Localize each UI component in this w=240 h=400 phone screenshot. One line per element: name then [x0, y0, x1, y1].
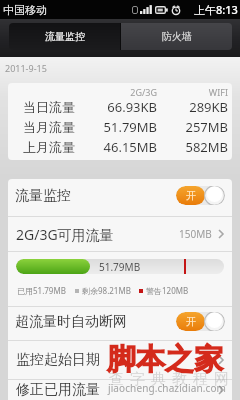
staticText: 150MB	[179, 227, 212, 241]
button[interactable]: Toggle on	[176, 186, 225, 205]
staticText: 已用51.79MB	[17, 285, 66, 296]
staticText: 582MB	[168, 138, 228, 156]
staticText: 超流量时自动断网	[15, 313, 127, 331]
staticText: 脚本之家	[107, 341, 223, 378]
button[interactable]: 防火墙	[121, 23, 232, 50]
staticText: 防火墙	[162, 30, 192, 43]
button[interactable]: 修正已用流量	[8, 380, 232, 400]
staticText: 剩余98.21MB	[82, 285, 131, 296]
button[interactable]: 超流量时自动断网	[8, 307, 232, 340]
staticText: 当月流量	[23, 119, 75, 135]
staticText: 46.15MB	[97, 138, 157, 156]
staticText: 51.79MB	[97, 118, 157, 136]
staticText: 中国移动	[3, 3, 47, 17]
staticText: 257MB	[168, 118, 228, 136]
staticText: 开	[186, 315, 196, 328]
staticText: WIFI	[168, 86, 228, 97]
staticText: 流量监控	[15, 187, 71, 205]
staticText: 上月流量	[23, 139, 75, 155]
button[interactable]: 流量监控	[8, 179, 232, 216]
staticText: 289KB	[168, 98, 228, 116]
staticText: 警告120MB	[146, 285, 189, 296]
button[interactable]: 2G/3G可用流量	[8, 217, 232, 251]
staticText: 2011-9-15	[5, 62, 47, 74]
staticText: 修正已用流量	[16, 381, 100, 399]
staticText: 查字典教程网	[106, 370, 232, 389]
button[interactable]: 流量监控	[9, 23, 120, 50]
staticText: 监控起始日期	[16, 351, 100, 369]
staticText: 开	[186, 189, 196, 202]
button[interactable]: Toggle on	[176, 312, 225, 331]
staticText: 2G/3G可用流量	[16, 225, 114, 244]
staticText: 66.93KB	[97, 98, 157, 116]
staticText: 上午8:13	[194, 2, 238, 17]
staticText: 2G/3G	[97, 86, 157, 97]
staticText: 当日流量	[23, 99, 75, 115]
button[interactable]: 监控起始日期	[8, 341, 232, 379]
staticText: 51.79MB	[99, 260, 141, 274]
staticText: 流量监控	[45, 30, 85, 43]
staticText: jiaocheng.chazidian.com	[108, 381, 227, 395]
